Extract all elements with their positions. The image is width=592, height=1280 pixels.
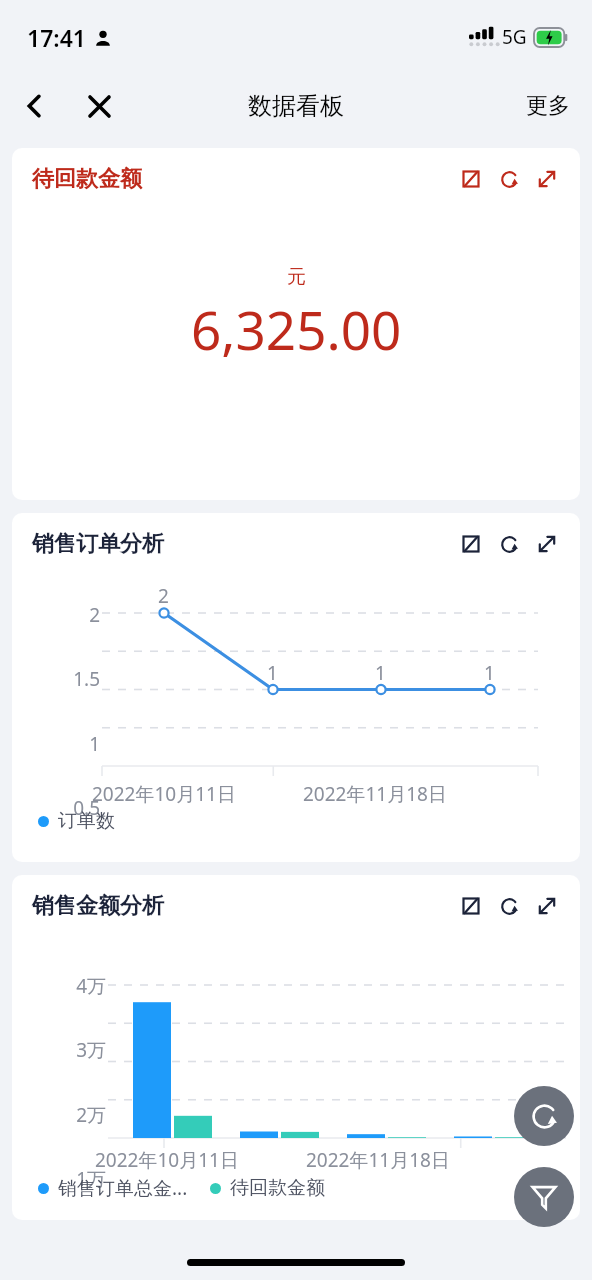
staticText: 1 (12, 731, 100, 757)
staticText: 销售订单分析 (32, 530, 164, 558)
staticText: 2022年11月18日 (306, 1147, 450, 1173)
button[interactable]: Chart type (456, 891, 486, 921)
button[interactable]: 更多 (518, 86, 578, 126)
staticText: 订单数 (58, 809, 115, 833)
staticText: 1 (484, 660, 495, 686)
staticText: 销售金额分析 (32, 892, 164, 920)
staticText: 元 (287, 265, 306, 289)
staticText: 2022年10月11日 (95, 1147, 239, 1173)
staticText: 17:41 (27, 22, 86, 53)
staticText: 数据看板 (248, 91, 344, 121)
staticText: 5G (502, 24, 527, 50)
staticText: 待回款金额 (32, 165, 142, 193)
staticText: 1 (375, 660, 386, 686)
button[interactable]: Filter (514, 1167, 574, 1227)
button[interactable]: Expand (532, 529, 562, 559)
staticText: 0 (12, 859, 100, 862)
button[interactable]: Refresh (494, 891, 524, 921)
staticText: 6,325.00 (191, 293, 402, 365)
staticText: 0.5 (12, 795, 100, 821)
staticText: 更多 (526, 92, 570, 120)
staticText: 2022年10月11日 (92, 781, 236, 807)
button[interactable]: Chart type (456, 164, 486, 194)
staticText: 2 (158, 583, 169, 609)
staticText: 1.5 (12, 666, 100, 692)
button[interactable]: Expand (532, 164, 562, 194)
staticText: 3万 (12, 1037, 106, 1063)
button[interactable]: Close (78, 85, 120, 127)
staticText: 2022年11月18日 (303, 781, 447, 807)
button[interactable]: 销售金额分析 (12, 875, 580, 1220)
staticText: 2 (12, 602, 100, 628)
button[interactable]: Refresh (494, 164, 524, 194)
staticText: 1万 (12, 1166, 106, 1192)
button[interactable]: 待回款金额 (12, 148, 580, 500)
staticText: 4万 (12, 973, 106, 999)
button[interactable]: Refresh (514, 1086, 574, 1146)
button[interactable]: Back (14, 85, 56, 127)
staticText: 2万 (12, 1102, 106, 1128)
button[interactable]: Expand (532, 891, 562, 921)
button[interactable]: Chart type (456, 529, 486, 559)
staticText: 销售订单总金... (58, 1175, 188, 1201)
staticText: 1 (267, 660, 278, 686)
staticText: 待回款金额 (230, 1176, 325, 1200)
button[interactable]: Refresh (494, 529, 524, 559)
button[interactable]: 销售订单分析 (12, 513, 580, 862)
